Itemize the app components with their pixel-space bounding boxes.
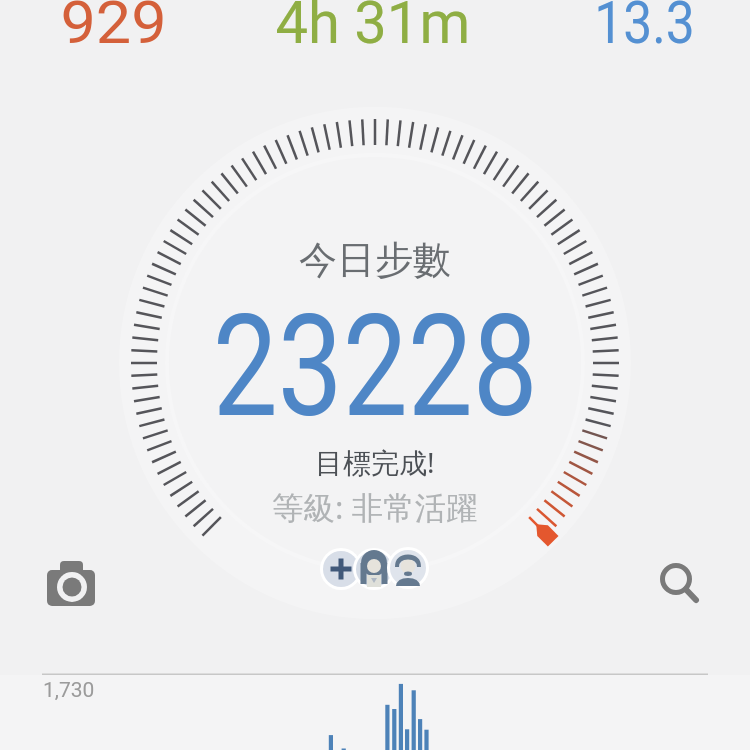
button[interactable] <box>40 555 102 613</box>
staticText: 目標完成! <box>315 443 435 481</box>
button[interactable] <box>650 553 706 609</box>
button[interactable] <box>387 547 429 589</box>
staticText: 1,730 <box>43 678 95 703</box>
button[interactable] <box>353 548 395 590</box>
staticText: 23228 <box>213 284 538 449</box>
button[interactable] <box>320 548 362 590</box>
staticText: 929 <box>60 0 167 57</box>
staticText: 13.3 <box>594 0 695 57</box>
staticText: 等級: 非常活躍 <box>272 485 478 528</box>
staticText: 今日步數 <box>299 236 451 284</box>
staticText: 4h 31m <box>275 0 470 57</box>
